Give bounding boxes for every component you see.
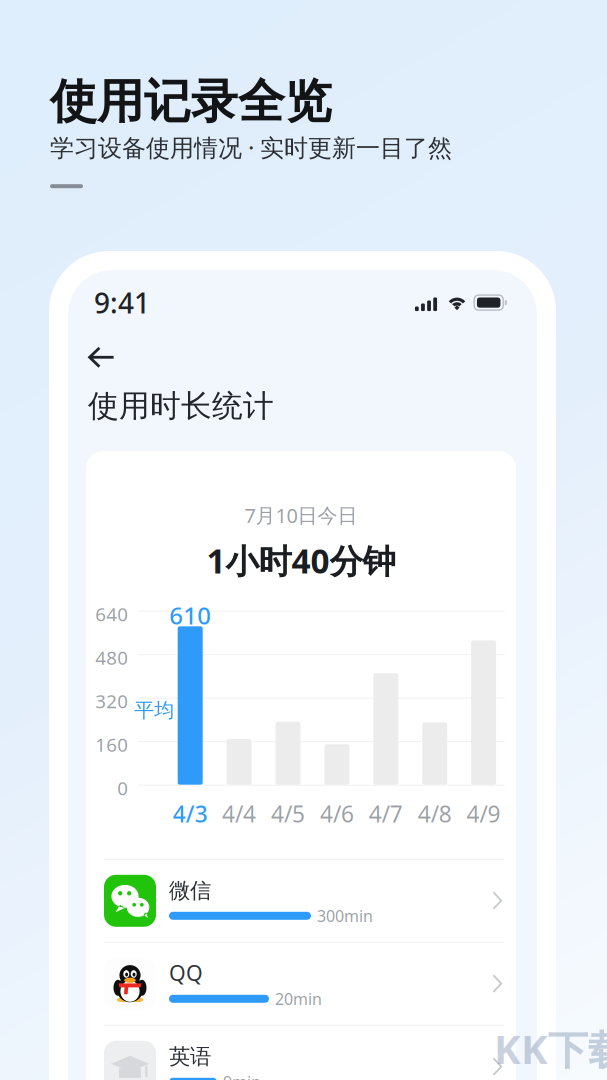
staticText: KK下载	[494, 1022, 607, 1075]
staticText: 4/6	[320, 799, 354, 829]
staticText: 4/7	[369, 799, 403, 829]
staticText: www.kkx.net	[494, 1077, 607, 1080]
staticText: 4/8	[418, 799, 452, 829]
staticText: 使用时长统计	[88, 387, 274, 425]
staticText: 610	[169, 599, 211, 631]
staticText: 微信	[169, 878, 211, 904]
staticText: 4/4	[222, 799, 256, 829]
button[interactable]: 英语	[104, 1026, 504, 1080]
button[interactable]: Back	[68, 337, 146, 377]
staticText: 300min	[317, 905, 373, 926]
staticText: 学习设备使用情况 · 实时更新一目了然	[50, 131, 452, 163]
staticText: 640	[95, 602, 128, 626]
staticText: 7月10日今日	[244, 502, 357, 528]
staticText: 4/9	[467, 799, 501, 829]
staticText: 平均	[134, 698, 174, 723]
button[interactable]: QQ	[104, 943, 504, 1025]
staticText: 0	[117, 776, 128, 800]
staticText: 4/5	[271, 799, 305, 829]
staticText: 英语	[169, 1044, 211, 1070]
staticText: 4/3	[173, 799, 208, 829]
staticText: 使用记录全览	[50, 73, 332, 130]
staticText: 20min	[275, 988, 322, 1009]
staticText: 480	[95, 645, 128, 670]
staticText: 160	[95, 732, 128, 757]
staticText: QQ	[169, 958, 203, 987]
staticText: 9min	[223, 1071, 261, 1080]
button[interactable]: 微信	[104, 860, 504, 942]
staticText: 1小时40分钟	[206, 538, 395, 583]
staticText: 320	[95, 689, 128, 713]
staticText: 9:41	[94, 284, 150, 321]
